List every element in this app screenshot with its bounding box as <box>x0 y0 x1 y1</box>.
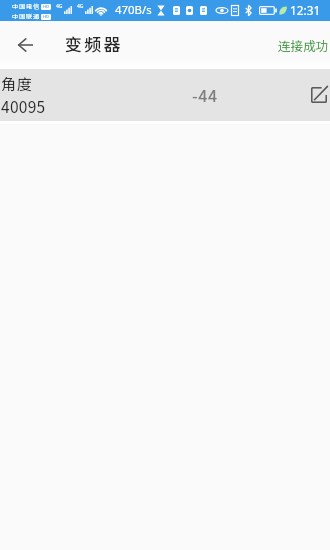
button[interactable]: Edit <box>299 75 330 115</box>
button[interactable]: Back <box>1 21 49 69</box>
staticText: 470B/s <box>115 2 152 18</box>
staticText: 中国电信 <box>12 2 40 11</box>
staticText: 角度 <box>1 73 33 95</box>
staticText: 4G <box>56 3 63 10</box>
staticText: 40095 <box>1 95 46 117</box>
staticText: 12:31 <box>290 2 321 18</box>
staticText: -44 <box>192 83 218 106</box>
button[interactable]: 连接成功 <box>264 28 330 62</box>
staticText: 中国联通 <box>12 12 40 21</box>
staticText: 4G <box>77 3 84 10</box>
staticText: 变频器 <box>65 31 123 56</box>
staticText: HD <box>43 4 50 10</box>
staticText: 连接成功 <box>278 36 329 54</box>
staticText: HD <box>43 14 50 20</box>
button[interactable]: 角度 <box>0 69 330 121</box>
